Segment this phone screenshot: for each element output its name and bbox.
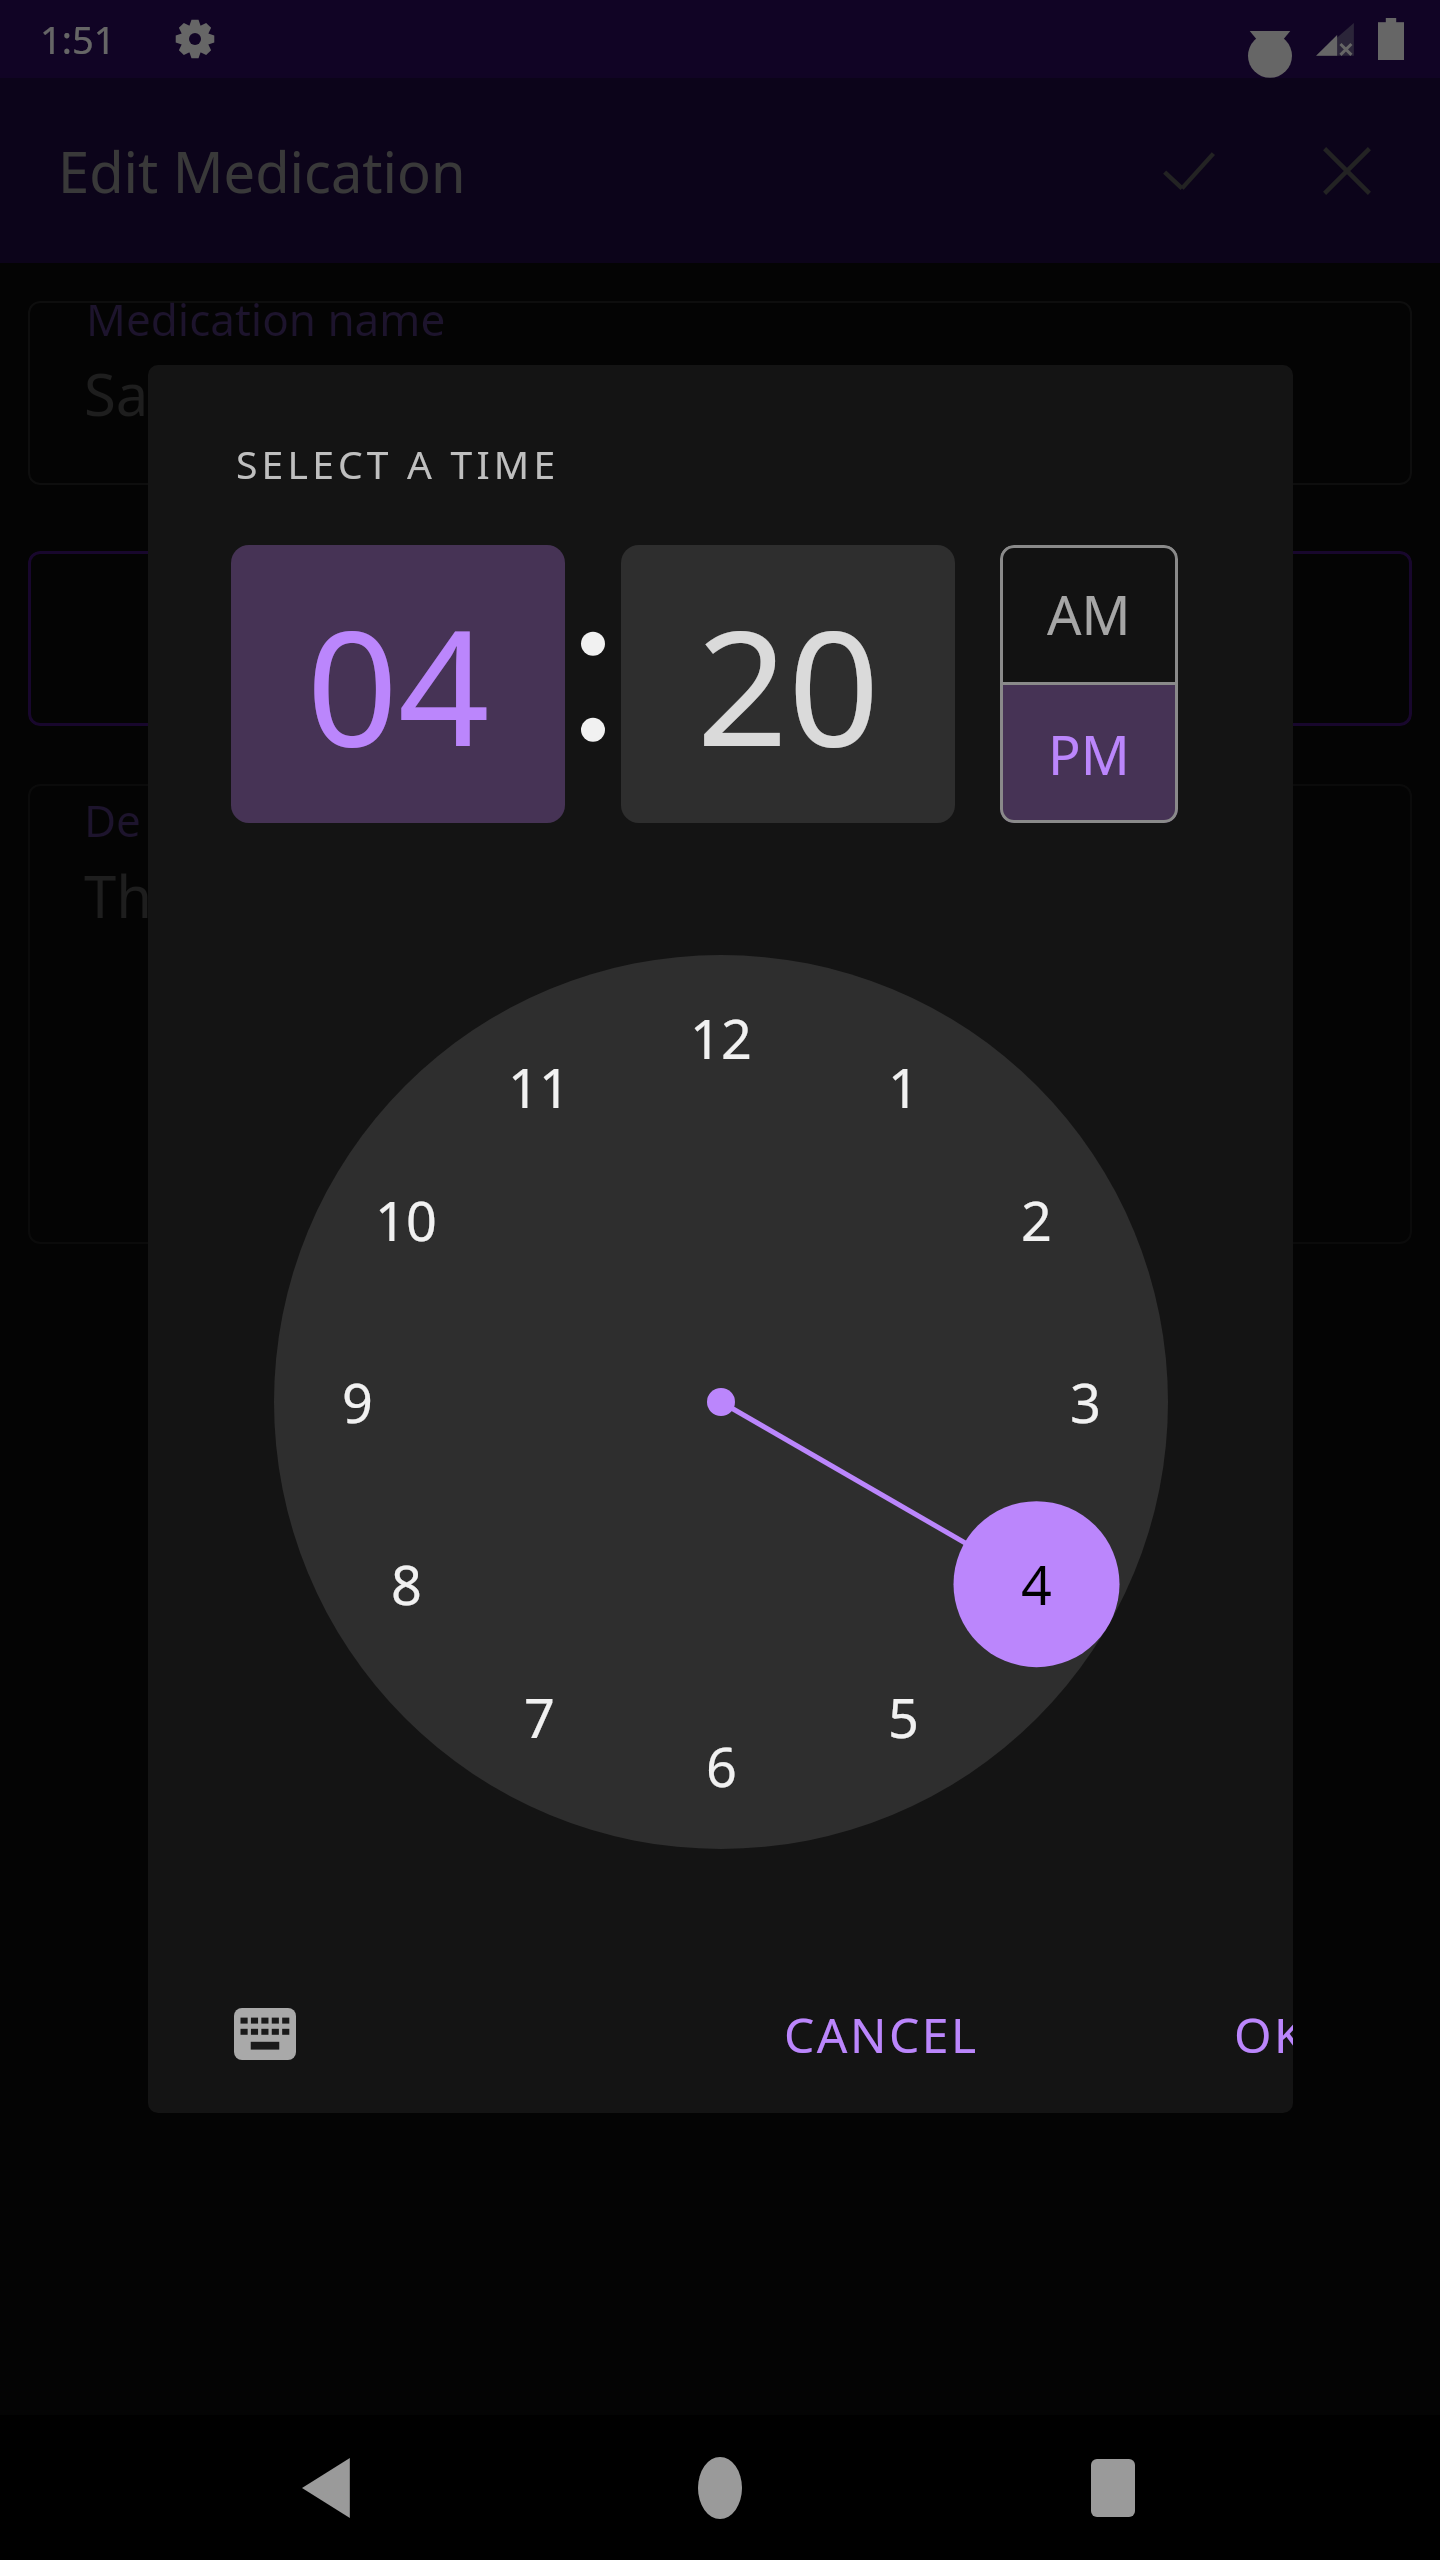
staticText: 1	[888, 1050, 919, 1124]
button[interactable]: Switch to text input	[206, 1975, 324, 2093]
staticText: 4	[1021, 1547, 1052, 1621]
staticText: Sa	[84, 354, 149, 433]
staticText: 04	[306, 575, 490, 793]
staticText: 8	[391, 1547, 422, 1621]
staticText: 9	[342, 1365, 373, 1439]
button[interactable]: Back	[263, 2423, 393, 2553]
staticText: Th	[84, 856, 153, 935]
staticText: 1:51	[40, 13, 116, 65]
staticText: 7	[524, 1680, 555, 1754]
staticText: 6	[706, 1729, 737, 1803]
button[interactable]: 04	[231, 545, 565, 823]
staticText: CANCEL	[784, 2002, 979, 2067]
button[interactable]: Recent apps	[1048, 2423, 1178, 2553]
button[interactable]: Save	[1152, 134, 1226, 208]
staticText: OK	[1234, 2002, 1293, 2067]
button[interactable]: 20	[621, 545, 955, 823]
button[interactable]: CANCEL	[758, 1979, 1005, 2089]
staticText: Medication name	[86, 289, 446, 349]
button[interactable]: OK	[1208, 1979, 1293, 2089]
button[interactable]: PM	[1000, 685, 1178, 823]
staticText: SELECT A TIME	[236, 437, 560, 490]
staticText: 3	[1070, 1365, 1101, 1439]
staticText: 11	[508, 1050, 570, 1124]
staticText: De	[84, 790, 141, 850]
staticText: PM	[1048, 717, 1130, 791]
staticText: Edit Medication	[58, 133, 466, 209]
button[interactable]: Home	[655, 2423, 785, 2553]
staticText: 2	[1021, 1183, 1052, 1257]
staticText: 12	[690, 1001, 752, 1075]
staticText: 5	[888, 1680, 919, 1754]
button[interactable]: AM	[1000, 545, 1178, 682]
button[interactable]: Close	[1310, 134, 1384, 208]
staticText: 20	[696, 575, 880, 793]
staticText: AM	[1047, 577, 1131, 651]
staticText: 10	[375, 1183, 437, 1257]
button[interactable]: Clock dial	[274, 955, 1168, 1849]
